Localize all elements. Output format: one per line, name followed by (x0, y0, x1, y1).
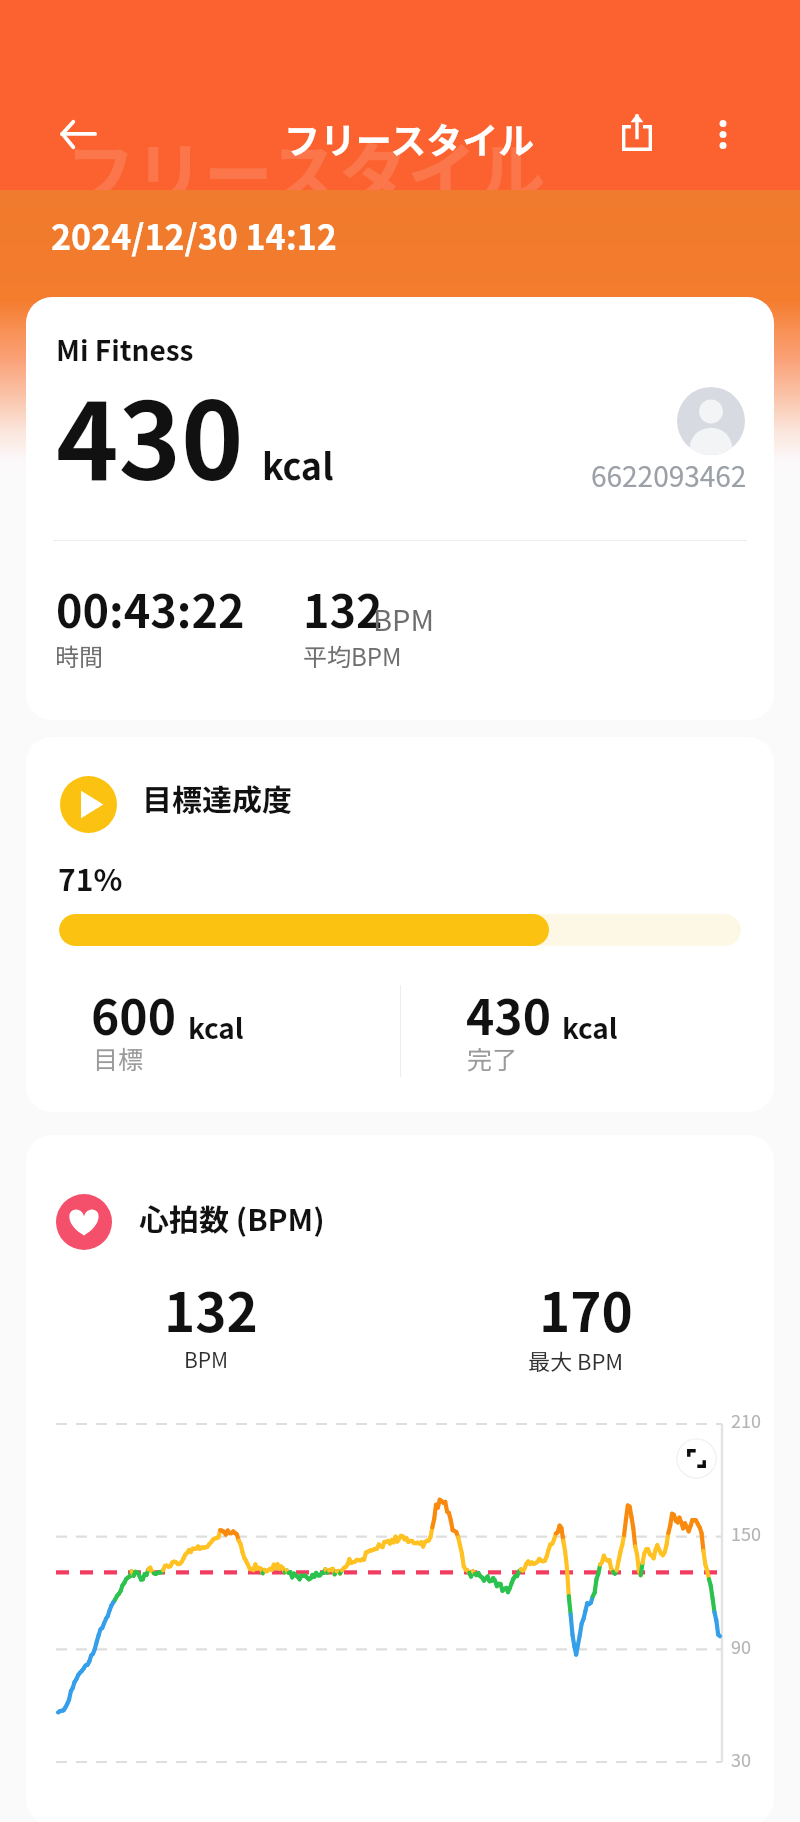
staticText: 最大 BPM (528, 1344, 624, 1376)
staticText: 6622093462 (591, 455, 747, 496)
staticText: 132 (303, 576, 383, 641)
staticText: 時間 (55, 638, 103, 673)
staticText: 心拍数 (BPM) (139, 1196, 325, 1239)
staticText: BPM (373, 597, 434, 639)
staticText: 00:43:22 (56, 576, 245, 641)
button[interactable]: Share (604, 98, 670, 164)
staticText: 170 (539, 1271, 633, 1348)
staticText: 2024/12/30 14:12 (51, 211, 337, 260)
staticText: 30 (731, 1746, 751, 1772)
staticText: 430 (466, 979, 551, 1049)
staticText: 132 (164, 1271, 258, 1348)
staticText: BPM (184, 1344, 229, 1374)
button[interactable]: Expand chart (676, 1438, 717, 1479)
staticText: kcal (188, 1007, 244, 1048)
staticText: 平均BPM (303, 638, 402, 673)
staticText: 完了 (467, 1040, 518, 1076)
staticText: kcal (562, 1007, 618, 1048)
button[interactable]: Back (45, 102, 111, 168)
staticText: 目標 (93, 1040, 144, 1076)
staticText: 600 (91, 979, 176, 1049)
staticText: 150 (731, 1520, 761, 1546)
staticText: kcal (262, 438, 334, 490)
staticText: 71% (58, 856, 123, 899)
staticText: 210 (731, 1407, 761, 1433)
staticText: フリースタイル (66, 120, 546, 190)
staticText: フリースタイル (284, 112, 535, 164)
button[interactable]: More options (690, 101, 756, 167)
staticText: 目標達成度 (142, 776, 292, 819)
staticText: 90 (731, 1633, 751, 1659)
staticText: Mi Fitness (56, 329, 194, 370)
staticText: 430 (56, 357, 244, 510)
